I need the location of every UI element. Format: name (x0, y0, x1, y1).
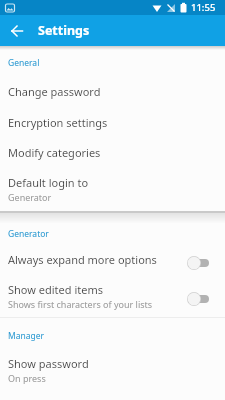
button[interactable]: Show edited items (0, 275, 225, 317)
button[interactable] (0, 15, 34, 46)
button[interactable]: Default login to (0, 167, 225, 210)
button[interactable]: Encryption settings (0, 107, 225, 137)
staticText: Generator (8, 191, 52, 203)
button[interactable]: Show password (0, 354, 225, 400)
staticText: Show password (8, 356, 89, 371)
staticText: Settings (38, 22, 90, 39)
button[interactable]: Change password (0, 76, 225, 107)
staticText: Manager (8, 330, 45, 342)
staticText: Shows first characters of your lists (8, 298, 153, 310)
staticText: Show edited items (8, 282, 103, 297)
staticText: General (8, 57, 40, 69)
button[interactable]: Modify categories (0, 137, 225, 167)
staticText: Generator (8, 228, 49, 240)
staticText: Change password (8, 84, 101, 99)
staticText: Encryption settings (8, 115, 108, 130)
staticText: Always expand more options (8, 252, 157, 267)
staticText: Default login to (8, 175, 89, 190)
staticText: On press (8, 372, 46, 384)
button[interactable]: Always expand more options (0, 244, 225, 275)
staticText: 11:55 (191, 1, 216, 14)
staticText: Modify categories (8, 145, 101, 160)
